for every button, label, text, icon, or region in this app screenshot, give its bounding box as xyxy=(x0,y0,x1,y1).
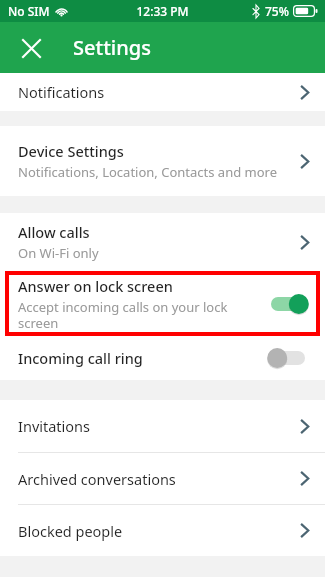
button[interactable]: Invitations xyxy=(0,400,325,452)
button[interactable]: Device Settings xyxy=(0,126,325,196)
staticText: Archived conversations xyxy=(18,469,176,489)
staticText: Allow calls xyxy=(18,222,90,242)
other: Open xyxy=(300,523,309,538)
button[interactable]: Incoming call ring xyxy=(0,336,325,380)
other: Open xyxy=(300,419,309,434)
button[interactable]: Close xyxy=(14,31,48,65)
staticText: Blocked people xyxy=(18,521,123,541)
button[interactable]: Archived conversations xyxy=(0,453,325,504)
staticText: Invitations xyxy=(18,416,91,436)
button[interactable]: Toggle on xyxy=(265,289,311,319)
button[interactable]: Toggle off xyxy=(265,343,311,373)
staticText: On Wi-Fi only xyxy=(18,244,99,262)
staticText: Accept incoming calls on your lock scree… xyxy=(18,298,253,331)
staticText: 75% xyxy=(265,3,289,19)
staticText: Notifications, Location, Contacts and mo… xyxy=(18,163,278,181)
other: Open xyxy=(300,471,309,486)
staticText: 12:33 PM xyxy=(136,3,189,19)
staticText: No SIM xyxy=(8,3,50,19)
other: Open xyxy=(300,235,309,250)
staticText: Incoming call ring xyxy=(18,348,143,368)
staticText: Device Settings xyxy=(18,141,124,161)
button[interactable]: Allow calls xyxy=(0,213,325,271)
staticText: Answer on lock screen xyxy=(18,276,173,296)
staticText: Notifications xyxy=(18,82,105,102)
button[interactable]: Blocked people xyxy=(0,505,325,556)
other: Open xyxy=(300,154,309,169)
button[interactable]: Answer on lock screen xyxy=(0,271,325,336)
button[interactable]: Notifications xyxy=(0,73,325,111)
staticText: Settings xyxy=(73,34,151,61)
other: Open xyxy=(300,85,309,100)
